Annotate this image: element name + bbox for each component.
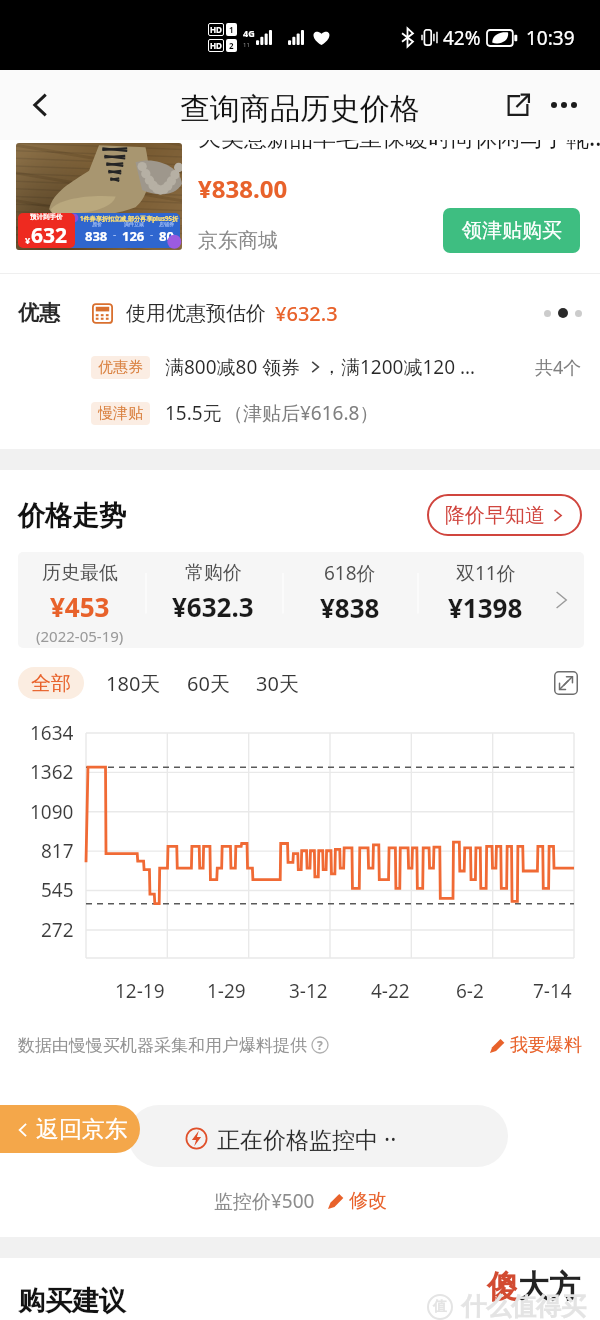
- button[interactable]: 修改: [327, 1189, 387, 1213]
- staticText: 使用优惠预估价: [126, 301, 266, 326]
- button[interactable]: 常购价: [146, 552, 280, 648]
- staticText: 80: [159, 227, 174, 245]
- button[interactable]: Expand chart: [550, 667, 582, 699]
- button[interactable]: Back: [15, 80, 65, 130]
- staticText: 数据由慢慢买机器采集和用户爆料提供: [18, 1035, 307, 1056]
- staticText: ¥632.3: [275, 300, 338, 327]
- staticText: 历史最低: [42, 561, 118, 585]
- staticText: ¥453: [50, 589, 110, 624]
- staticText: 优惠券: [98, 358, 143, 377]
- staticText: 126: [122, 227, 145, 245]
- staticText: 1-29: [207, 978, 246, 1004]
- staticText: 常购价: [185, 561, 242, 585]
- staticText: 店铺券: [159, 221, 174, 227]
- staticText: 查询商品历史价格: [180, 90, 420, 128]
- staticText: （津贴后¥616.8）: [224, 400, 379, 426]
- staticText: 2: [229, 40, 234, 51]
- button[interactable]: 历史最低: [13, 552, 147, 648]
- staticText: 272: [41, 917, 74, 943]
- staticText: 满1200减120 …: [341, 354, 476, 380]
- staticText: 我要爆料: [510, 1034, 582, 1057]
- button[interactable]: 领津贴购买: [443, 208, 580, 253]
- button[interactable]: More options: [542, 83, 586, 127]
- staticText: 1634: [30, 720, 74, 746]
- staticText: 12-19: [115, 978, 165, 1004]
- staticText: 11: [243, 41, 250, 49]
- staticText: 7-14: [533, 978, 572, 1004]
- staticText: 60天: [187, 670, 230, 696]
- staticText: 10:39: [526, 25, 575, 51]
- staticText: 大方: [518, 1267, 580, 1306]
- staticText: 监控价¥500: [214, 1188, 315, 1214]
- button[interactable]: 180天: [98, 666, 169, 700]
- staticText: 双11价: [456, 560, 516, 586]
- staticText: 原价: [92, 221, 102, 227]
- staticText: ?: [317, 1037, 323, 1053]
- staticText: 817: [41, 838, 74, 864]
- staticText: (2022-05-19): [36, 626, 124, 646]
- staticText: 值: [433, 1298, 447, 1316]
- staticText: 天美意新品羊毛里保暖时尚休闲马丁靴…: [198, 139, 600, 152]
- button[interactable]: 全部: [18, 667, 84, 699]
- staticText: ¥838: [320, 590, 380, 625]
- staticText: 632: [31, 221, 68, 248]
- button[interactable]: 正在价格监控中 ··: [128, 1105, 508, 1167]
- button[interactable]: 降价早知道: [427, 494, 582, 536]
- staticText: -: [150, 227, 154, 241]
- staticText: 838: [85, 227, 108, 245]
- staticText: 1件券享折扣立减,部分再享plus95折: [80, 214, 179, 222]
- button[interactable]: 我要爆料: [489, 1034, 582, 1057]
- button[interactable]: 618价: [283, 552, 417, 648]
- staticText: 正在价格监控中 ··: [217, 1123, 397, 1154]
- staticText: HD: [210, 24, 222, 35]
- staticText: 慢津贴: [98, 404, 143, 423]
- button[interactable]: 60天: [179, 666, 238, 700]
- staticText: ¥632.3: [172, 589, 254, 624]
- staticText: -: [113, 227, 117, 241]
- staticText: HD: [210, 40, 222, 51]
- staticText: 全部: [31, 671, 71, 696]
- staticText: 1: [229, 24, 234, 35]
- button[interactable]: 30天: [248, 666, 307, 700]
- staticText: 价格走势: [18, 499, 126, 533]
- staticText: 购买建议: [18, 1284, 126, 1318]
- staticText: 15.5元: [165, 400, 222, 426]
- staticText: 42%: [443, 25, 481, 51]
- staticText: 3-12: [289, 978, 328, 1004]
- staticText: 4-22: [371, 978, 410, 1004]
- staticText: ¥1398: [448, 590, 523, 625]
- staticText: 满800减80 领券: [165, 354, 301, 380]
- staticText: 京东商城: [198, 228, 278, 253]
- staticText: 领津贴购买: [462, 218, 562, 243]
- staticText: 共4个: [535, 355, 582, 380]
- staticText: 618价: [324, 560, 376, 586]
- button[interactable]: 双11价: [418, 552, 552, 648]
- staticText: 1090: [30, 799, 74, 825]
- staticText: 6-2: [456, 978, 484, 1004]
- button[interactable]: 满800减80 领券: [165, 354, 322, 380]
- staticText: 545: [41, 877, 74, 903]
- staticText: 傻: [487, 1267, 518, 1306]
- staticText: ¥: [25, 234, 31, 246]
- staticText: 180天: [106, 670, 161, 696]
- staticText: 满件立减: [124, 221, 144, 227]
- staticText: 30天: [256, 670, 299, 696]
- staticText: 降价早知道: [445, 503, 545, 528]
- staticText: 什么值得买: [461, 1291, 586, 1320]
- staticText: 4G: [243, 27, 255, 39]
- button[interactable]: 1件券享折扣立减,部分再享plus95折: [16, 143, 182, 250]
- staticText: 优惠: [18, 300, 60, 326]
- button[interactable]: More price stats: [538, 552, 584, 648]
- staticText: 修改: [349, 1189, 387, 1213]
- button[interactable]: 返回京东: [0, 1105, 140, 1153]
- staticText: 预计到手价: [30, 213, 63, 221]
- staticText: 返回京东: [36, 1115, 128, 1144]
- staticText: ¥838.00: [198, 172, 288, 205]
- staticText: 1362: [30, 759, 74, 785]
- staticText: ，: [322, 355, 341, 379]
- button[interactable]: Share: [496, 83, 540, 127]
